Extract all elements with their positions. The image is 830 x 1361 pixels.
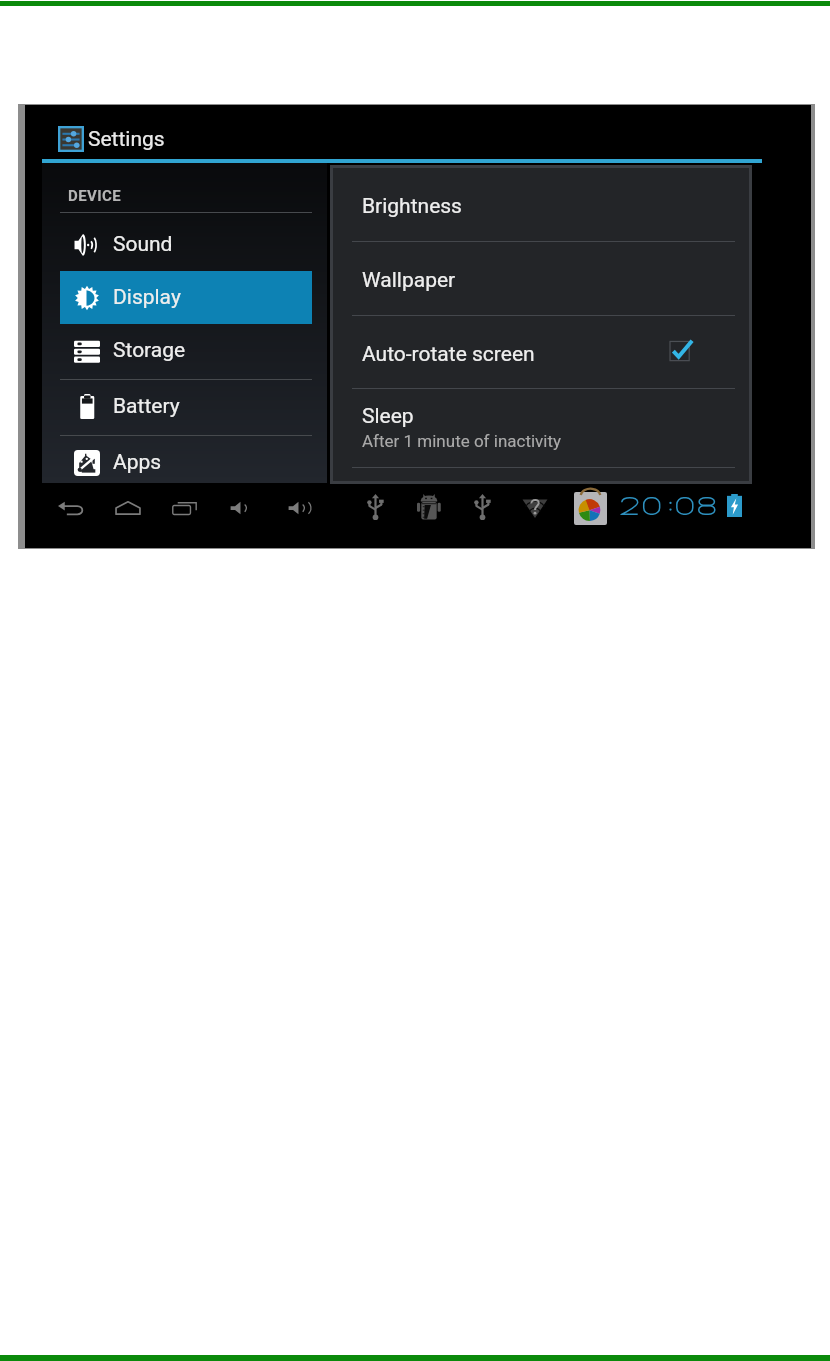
button[interactable]: Sleep xyxy=(333,389,749,467)
staticText: Auto-rotate screen xyxy=(362,342,535,367)
button[interactable]: Recent apps xyxy=(169,492,201,523)
button[interactable]: Settings xyxy=(58,126,84,152)
button[interactable]: Back xyxy=(55,492,87,523)
staticText: Brightness xyxy=(362,194,462,219)
staticText: Battery xyxy=(113,394,180,419)
button[interactable]: Volume up xyxy=(283,492,315,523)
staticText: Settings xyxy=(88,127,165,152)
button[interactable]: Display xyxy=(60,271,312,324)
staticText: Sound xyxy=(113,232,173,257)
button[interactable]: Brightness xyxy=(333,168,749,241)
staticText: DEVICE xyxy=(68,187,122,205)
button[interactable]: Apps xyxy=(60,436,312,489)
button[interactable]: Home xyxy=(112,492,144,523)
button[interactable]: Wallpaper xyxy=(333,242,749,315)
staticText: Apps xyxy=(113,450,162,475)
staticText: After 1 minute of inactivity xyxy=(362,431,562,451)
staticText: Wallpaper xyxy=(362,268,456,293)
staticText: Display xyxy=(113,285,181,310)
staticText: Sleep xyxy=(362,404,414,429)
button[interactable]: Storage xyxy=(60,324,312,377)
staticText: Storage xyxy=(113,338,186,363)
button[interactable]: Sound xyxy=(60,218,312,271)
button[interactable]: Auto-rotate screen xyxy=(333,316,749,388)
button[interactable]: Battery xyxy=(60,380,312,433)
button[interactable]: Volume down xyxy=(225,492,257,523)
